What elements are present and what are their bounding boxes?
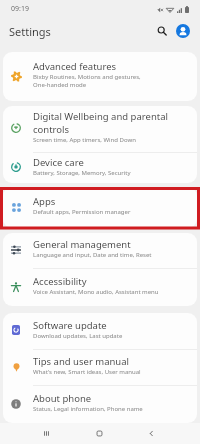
staticText: Digital Wellbeing and parental xyxy=(33,110,168,123)
staticText: Status, Legal information, Phone name xyxy=(33,405,143,413)
button[interactable]: Search xyxy=(153,22,171,40)
button[interactable]: Device care xyxy=(3,153,197,183)
staticText: Apps xyxy=(33,195,56,208)
button[interactable]: Apps xyxy=(3,187,197,228)
staticText: Screen time, App timers, Wind Down xyxy=(33,136,136,144)
staticText: About phone xyxy=(33,392,92,405)
button[interactable]: Digital Wellbeing and parental xyxy=(3,106,197,152)
staticText: controls xyxy=(33,123,70,136)
staticText: Software update xyxy=(33,319,107,332)
staticText: Tips and user manual xyxy=(33,355,130,368)
button[interactable]: Back xyxy=(141,423,162,444)
staticText: One-handed mode xyxy=(33,81,87,89)
staticText: Device care xyxy=(33,156,84,169)
staticText: Language and input, Date and time, Reset xyxy=(33,251,152,259)
staticText: Download updates, Last update xyxy=(33,332,123,340)
button[interactable]: Accessibility xyxy=(3,269,197,306)
staticText: Bixby Routines, Motions and gestures, xyxy=(33,73,141,81)
button[interactable]: Advanced features xyxy=(3,52,197,101)
staticText: Battery, Storage, Memory, Security xyxy=(33,169,131,177)
staticText: Default apps, Permission manager xyxy=(33,208,131,216)
button[interactable]: Tips and user manual xyxy=(3,350,197,385)
button[interactable]: General management xyxy=(3,233,197,268)
button[interactable]: Software update xyxy=(3,313,197,349)
button[interactable]: Home xyxy=(89,423,110,444)
button[interactable]: Account xyxy=(176,24,190,38)
staticText: General management xyxy=(33,238,131,251)
staticText: Voice Assistant, Mono audio, Assistant m… xyxy=(33,288,159,296)
staticText: Accessibility xyxy=(33,275,87,288)
button[interactable]: About phone xyxy=(3,386,197,423)
staticText: 09:19 xyxy=(11,4,29,14)
staticText: What's new, Smart ideas, User manual xyxy=(33,368,141,376)
staticText: Advanced features xyxy=(33,60,117,73)
button[interactable]: Recents xyxy=(36,423,57,444)
staticText: Settings xyxy=(9,24,51,39)
